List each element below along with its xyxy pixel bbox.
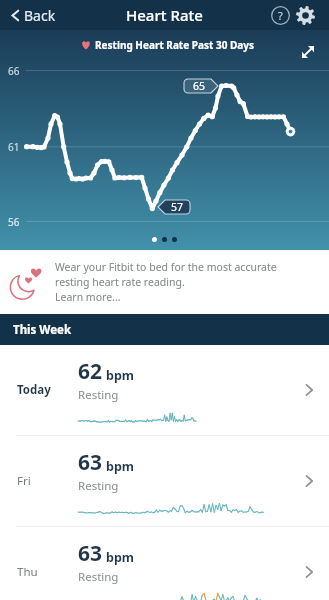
staticText: Wear your Fitbit to bed for the most acc… [55,260,277,274]
button[interactable]: Wear your Fitbit to bed for the most acc… [0,250,329,314]
staticText: Heart Rate [126,5,203,25]
staticText: 65 [193,79,206,93]
staticText: 62 [78,357,103,386]
staticText: Fri [17,473,31,489]
button[interactable]: Help [268,3,292,27]
staticText: Resting [78,569,119,585]
staticText: Resting Heart Rate Past 30 Days [95,38,255,52]
staticText: Thu [17,564,38,580]
staticText: 61 [8,140,20,154]
staticText: ? [278,8,283,23]
staticText: resting heart rate reading. [55,275,185,289]
staticText: bpm [106,549,134,566]
staticText: Today [17,382,51,398]
staticText: Resting [78,387,119,403]
staticText: 57 [171,200,184,214]
button[interactable]: Expand chart [296,40,320,64]
staticText: 66 [8,64,20,78]
staticText: 56 [8,215,20,229]
button[interactable]: Settings [293,3,317,27]
staticText: Learn more... [55,290,121,304]
staticText: Back [24,6,56,25]
staticText: 63 [78,448,103,477]
button[interactable]: Today [0,345,329,435]
staticText: 63 [78,539,103,568]
staticText: This Week [13,322,72,338]
button[interactable]: Fri [0,436,329,526]
staticText: bpm [106,367,134,384]
button[interactable]: Thu [0,527,329,600]
staticText: Resting [78,478,119,494]
button[interactable]: Back [0,0,64,30]
staticText: bpm [106,458,134,475]
